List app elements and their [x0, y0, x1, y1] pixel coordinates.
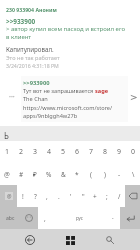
button[interactable]: Search: [100, 230, 120, 250]
staticText: %: [46, 170, 52, 179]
button[interactable]: 9: [112, 141, 126, 163]
staticText: 4: [47, 147, 52, 157]
staticText: Это не так работает: [6, 54, 60, 62]
staticText: 3: [33, 147, 38, 157]
button[interactable]: &: [56, 163, 70, 185]
button[interactable]: Message input: [0, 126, 140, 141]
staticText: ,: [44, 214, 46, 223]
staticText: 9: [117, 147, 122, 157]
button[interactable]: ": [77, 185, 89, 207]
staticText: &: [61, 170, 66, 179]
button[interactable]: *: [70, 163, 84, 185]
button[interactable]: Backspace: [125, 185, 140, 207]
staticText: @: [4, 170, 10, 179]
staticText: >>933900: [23, 79, 50, 87]
staticText: /: [118, 192, 121, 201]
button[interactable]: 3: [28, 141, 42, 163]
button[interactable]: More options: [6, 92, 18, 102]
button[interactable]: !: [17, 185, 29, 207]
button[interactable]: ): [98, 163, 112, 185]
staticText: 2: [19, 147, 24, 157]
staticText: >>933900: [6, 17, 36, 26]
staticText: abc: [6, 215, 15, 222]
button[interactable]: @: [0, 163, 14, 185]
button[interactable]: \: [126, 163, 140, 185]
button[interactable]: More symbols: [0, 185, 17, 207]
staticText: -: [118, 170, 121, 179]
button[interactable]: 8: [98, 141, 112, 163]
button[interactable]: Forward: [129, 93, 137, 101]
button[interactable]: ₽: [28, 163, 42, 185]
staticText: @: [7, 193, 12, 200]
button[interactable]: abc: [0, 207, 20, 229]
staticText: The Chan: [23, 95, 48, 103]
staticText: •••: [9, 94, 15, 101]
staticText: \: [132, 170, 135, 179]
button[interactable]: 7: [84, 141, 98, 163]
button[interactable]: 5: [56, 141, 70, 163]
staticText: !: [22, 192, 24, 201]
staticText: рус: [76, 215, 83, 221]
staticText: ₽: [33, 170, 37, 179]
staticText: Тут вот не запрашивается: [23, 87, 95, 95]
staticText: 6: [75, 147, 80, 157]
staticText: Ь: [4, 130, 9, 141]
staticText: *: [75, 170, 79, 179]
staticText: 0: [131, 147, 136, 157]
button[interactable]: 6: [70, 141, 84, 163]
staticText: 1: [5, 147, 10, 157]
staticText: sage: [95, 87, 109, 95]
button[interactable]: 0: [126, 141, 140, 163]
button[interactable]: +: [89, 185, 101, 207]
button[interactable]: ·: [106, 207, 120, 229]
staticText: (: [90, 170, 92, 179]
button[interactable]: ': [65, 185, 77, 207]
button[interactable]: .: [53, 185, 65, 207]
staticText: ?: [34, 192, 37, 201]
button[interactable]: ,: [41, 185, 53, 207]
button[interactable]: ?: [29, 185, 41, 207]
button[interactable]: #: [14, 163, 28, 185]
staticText: Капитулировал.: [6, 45, 54, 53]
staticText: https://www.microsoft.com/store/: [23, 104, 113, 112]
staticText: ": [82, 192, 85, 201]
button[interactable]: ;: [101, 185, 113, 207]
button[interactable]: Start: [60, 230, 80, 250]
staticText: apps/9nblggh4w27b: [23, 112, 78, 120]
button[interactable]: Enter: [120, 207, 140, 229]
button[interactable]: (: [84, 163, 98, 185]
button[interactable]: рус: [52, 207, 106, 229]
staticText: > автор купил всем пасход и встроил его: [6, 25, 126, 33]
button[interactable]: %: [42, 163, 56, 185]
button[interactable]: -: [112, 163, 126, 185]
staticText: 230 933904 Аноним: [6, 6, 57, 13]
button[interactable]: /: [113, 185, 125, 207]
staticText: ·: [112, 214, 114, 223]
staticText: ;: [106, 192, 108, 201]
button[interactable]: Back: [20, 230, 40, 250]
staticText: 8: [103, 147, 108, 157]
button[interactable]: Emoji: [20, 207, 38, 229]
button[interactable]: ,: [38, 207, 52, 229]
staticText: .: [58, 192, 60, 201]
button[interactable]: 1: [0, 141, 14, 163]
staticText: 5: [61, 147, 66, 157]
button[interactable]: 4: [42, 141, 56, 163]
staticText: 7: [89, 147, 94, 157]
staticText: ': [70, 192, 72, 201]
button[interactable]: [21, 76, 128, 122]
staticText: ,: [46, 192, 48, 201]
staticText: #: [19, 170, 24, 179]
staticText: +: [93, 192, 97, 201]
staticText: в клиент: [6, 33, 32, 41]
button[interactable]: 2: [14, 141, 28, 163]
staticText: ): [104, 170, 106, 179]
staticText: 3/24/2016 4:31:18 PM: [6, 62, 59, 69]
